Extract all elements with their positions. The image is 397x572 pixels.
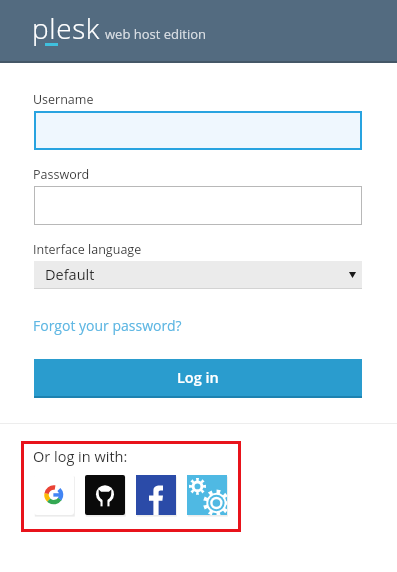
staticText: Default	[45, 265, 95, 285]
button[interactable]: Forgot your password?	[33, 316, 182, 335]
button[interactable]	[34, 186, 362, 225]
button[interactable]	[34, 111, 362, 150]
staticText: Password	[33, 166, 90, 183]
button[interactable]: Default	[34, 261, 362, 289]
staticText: Interface language	[33, 241, 142, 258]
staticText: Or log in with:	[33, 447, 128, 467]
staticText: plesk	[32, 9, 100, 47]
staticText: Username	[33, 91, 94, 108]
staticText: Log in	[177, 368, 219, 388]
button[interactable]: Sign in with Google	[34, 475, 74, 515]
staticText: Forgot your password?	[33, 316, 182, 335]
button[interactable]: Log in	[34, 359, 362, 398]
button[interactable]: Sign in with Plesk	[187, 475, 227, 515]
button[interactable]: Sign in with Facebook	[136, 475, 176, 515]
button[interactable]: Sign in with GitHub	[85, 475, 125, 515]
staticText: web host edition	[105, 25, 207, 43]
